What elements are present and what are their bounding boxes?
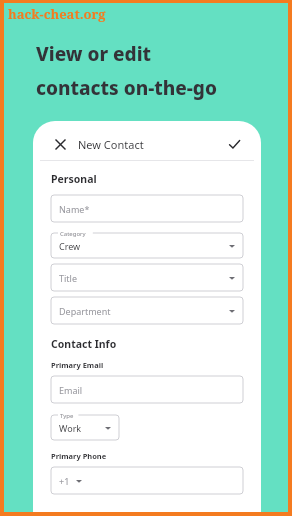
staticText: Name* [59, 203, 90, 215]
button[interactable]: Type [51, 410, 119, 440]
button[interactable]: Close [50, 134, 70, 154]
button[interactable]: Save contact [224, 134, 244, 154]
button[interactable]: Department [51, 297, 243, 324]
button[interactable]: Email [51, 376, 243, 403]
button[interactable]: Category [51, 228, 243, 258]
staticText: Email [59, 384, 83, 396]
staticText: +1 [59, 475, 70, 487]
staticText: Primary Email [51, 360, 104, 370]
staticText: Contact Info [51, 337, 117, 351]
staticText: Work [59, 422, 82, 434]
staticText: Type [60, 412, 74, 420]
button[interactable]: +1 [51, 467, 243, 494]
staticText: Personal [51, 172, 97, 186]
staticText: Category [60, 230, 86, 238]
staticText: View or edit [36, 41, 152, 67]
staticText: Crew [59, 240, 81, 252]
staticText: New Contact [78, 137, 144, 152]
button[interactable]: Title [51, 264, 243, 291]
staticText: contacts on-the-go [36, 75, 217, 101]
staticText: Department [59, 305, 111, 317]
staticText: hack-cheat.org [8, 5, 106, 23]
button[interactable]: Name* [51, 195, 243, 222]
staticText: Title [59, 272, 77, 284]
staticText: Primary Phone [51, 451, 107, 461]
